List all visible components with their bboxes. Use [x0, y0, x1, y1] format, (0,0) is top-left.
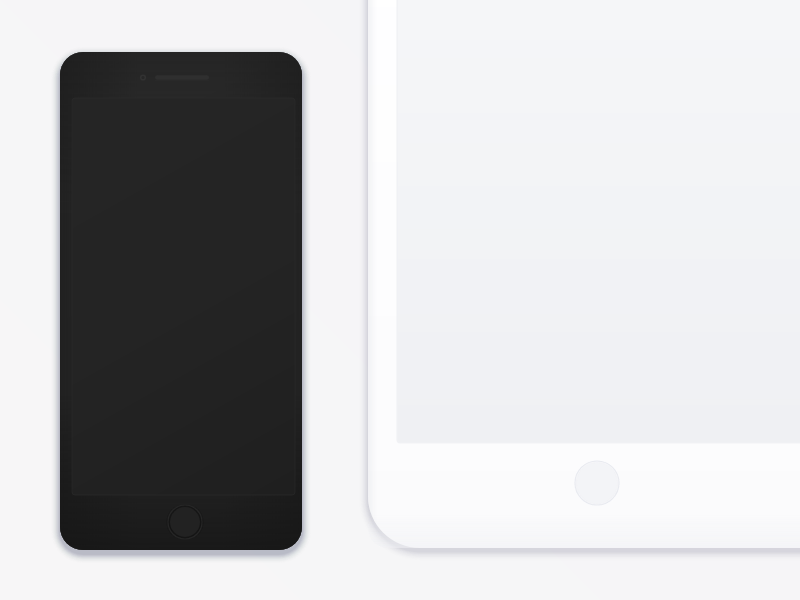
button[interactable]: Smartphone and tablet device mockup	[0, 0, 800, 600]
